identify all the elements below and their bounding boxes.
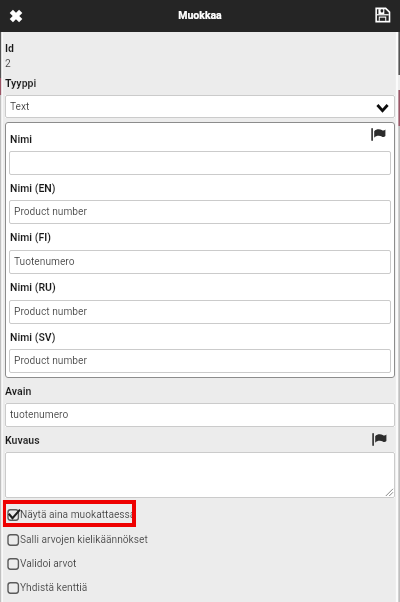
button[interactable]: Save [369, 2, 396, 29]
staticText: Product number [14, 206, 87, 218]
staticText: Validoi arvot [20, 558, 77, 570]
staticText: 2 [5, 58, 11, 70]
button[interactable]: Salli arvojen kielikäännökset [0, 528, 400, 550]
button[interactable]: Product number [9, 300, 391, 324]
staticText: Kuvaus [5, 434, 40, 446]
button[interactable]: Validoi arvot [0, 552, 400, 574]
button[interactable]: Tuotenumero [9, 250, 391, 274]
button[interactable]: Product number [9, 349, 391, 373]
staticText: tuotenumero [10, 409, 69, 421]
staticText: Text [10, 101, 30, 113]
button[interactable]: Näytä aina muokattaessa [0, 503, 400, 525]
staticText: Yhdistä kenttiä [20, 582, 88, 594]
staticText: Salli arvojen kielikäännökset [20, 534, 148, 546]
staticText: Product number [14, 355, 87, 367]
staticText: Nimi (FI) [10, 231, 51, 243]
staticText: Product number [14, 306, 87, 318]
staticText: Id [5, 42, 14, 54]
staticText: Nimi (EN) [10, 182, 56, 194]
staticText: Nimi (RU) [10, 281, 56, 293]
button[interactable]: Product number [9, 200, 391, 224]
button[interactable]: tuotenumero [5, 403, 395, 427]
button[interactable]: Text [5, 95, 395, 118]
staticText: Nimi (SV) [10, 331, 56, 343]
staticText: Tyyppi [5, 77, 37, 89]
staticText: Avain [5, 385, 32, 397]
staticText: Muokkaa [0, 9, 400, 21]
button[interactable]: Close [3, 3, 29, 29]
button[interactable] [5, 452, 395, 498]
button[interactable] [9, 151, 391, 175]
staticText: Näytä aina muokattaessa [20, 509, 136, 521]
button[interactable]: Yhdistä kenttiä [0, 576, 400, 598]
staticText: Tuotenumero [14, 256, 75, 268]
staticText: Nimi [10, 133, 33, 145]
